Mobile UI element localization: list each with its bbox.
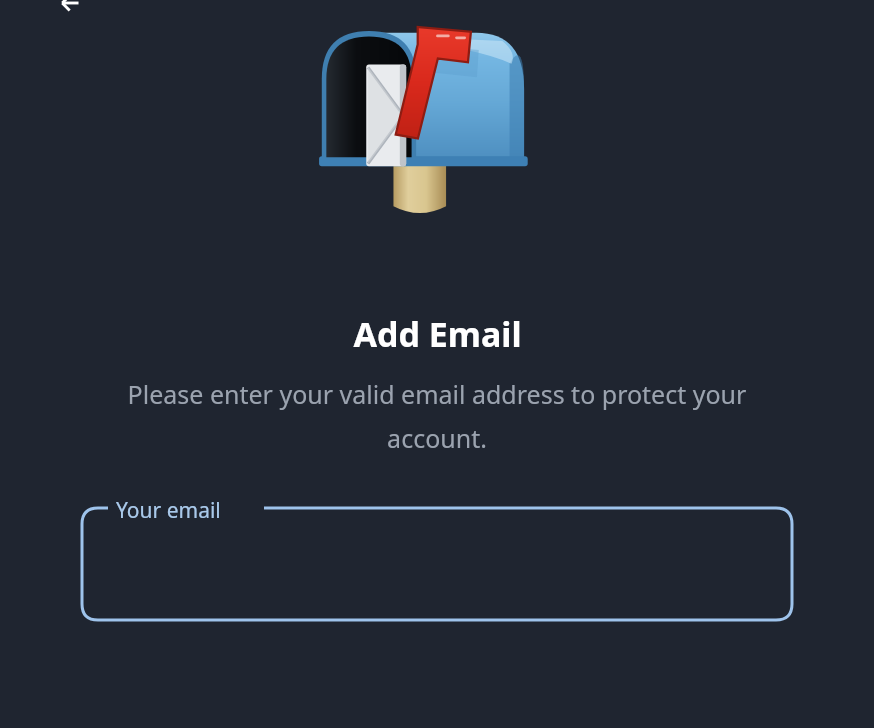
button[interactable]: Back <box>52 0 86 20</box>
button[interactable]: Your email <box>82 508 792 620</box>
staticText: Please enter your valid email address to… <box>117 377 757 456</box>
staticText: Your email <box>116 496 221 525</box>
staticText: Add Email <box>353 311 522 357</box>
